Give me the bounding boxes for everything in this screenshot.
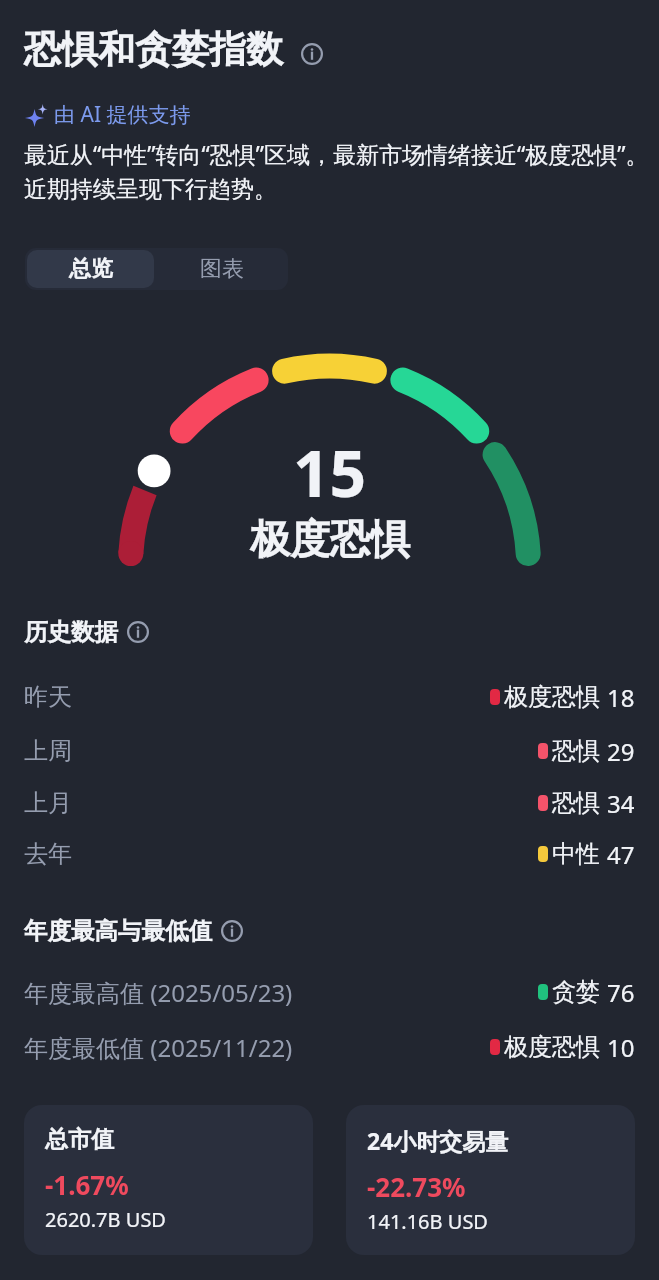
staticText: 上周	[24, 736, 72, 766]
staticText: 极度恐惧	[504, 1032, 600, 1062]
staticText: 上月	[24, 788, 72, 818]
staticText: 2620.7B USD	[45, 1206, 166, 1233]
button[interactable]: About yearly high and low	[221, 920, 243, 942]
button[interactable]: About historical data	[127, 621, 149, 643]
staticText: 34	[607, 787, 635, 820]
staticText: 29	[607, 735, 635, 768]
staticText: 昨天	[24, 682, 72, 712]
staticText: 76	[607, 976, 635, 1009]
button[interactable]: 总览	[27, 250, 154, 288]
staticText: 中性	[552, 839, 600, 869]
button[interactable]: 年度最低值 (2025/11/22)	[0, 1021, 659, 1073]
staticText: 10	[607, 1031, 635, 1064]
staticText: 贪婪	[552, 977, 600, 1007]
button[interactable]: 24小时交易量	[346, 1105, 635, 1255]
staticText: -22.73%	[367, 1169, 466, 1204]
button[interactable]: 上月	[0, 777, 659, 829]
button[interactable]: 总市值	[24, 1105, 313, 1255]
staticText: 历史数据	[24, 617, 118, 647]
staticText: 最近从“中性”转向“恐惧”区域，最新市场情绪接近“极度恐惧”。 近期持续呈现下行…	[24, 138, 649, 204]
staticText: 18	[607, 681, 635, 714]
staticText: 极度恐惧	[250, 514, 410, 564]
staticText: 15	[293, 429, 367, 516]
button[interactable]: About Fear and Greed Index	[301, 43, 323, 65]
staticText: 141.16B USD	[367, 1208, 488, 1235]
staticText: 图表	[200, 255, 244, 283]
staticText: 恐惧	[552, 736, 600, 766]
staticText: 极度恐惧	[504, 682, 600, 712]
staticText: 年度最高与最低值	[24, 916, 212, 946]
staticText: -1.67%	[45, 1167, 129, 1202]
button[interactable]: 上周	[0, 725, 659, 777]
button[interactable]: 昨天	[0, 671, 659, 723]
button[interactable]: 图表	[156, 248, 288, 290]
staticText: 恐惧	[552, 788, 600, 818]
button[interactable]: 年度最高值 (2025/05/23)	[0, 966, 659, 1018]
button[interactable]: 去年	[0, 828, 659, 880]
staticText: 由 AI 提供支持	[54, 100, 191, 129]
staticText: 24小时交易量	[367, 1125, 509, 1156]
staticText: 去年	[24, 839, 72, 869]
staticText: 总市值	[45, 1125, 114, 1154]
staticText: 总览	[69, 255, 113, 283]
staticText: 47	[607, 838, 635, 871]
staticText: 年度最高值 (2025/05/23)	[24, 976, 293, 1009]
staticText: 恐惧和贪婪指数	[24, 26, 283, 73]
staticText: 年度最低值 (2025/11/22)	[24, 1031, 293, 1064]
